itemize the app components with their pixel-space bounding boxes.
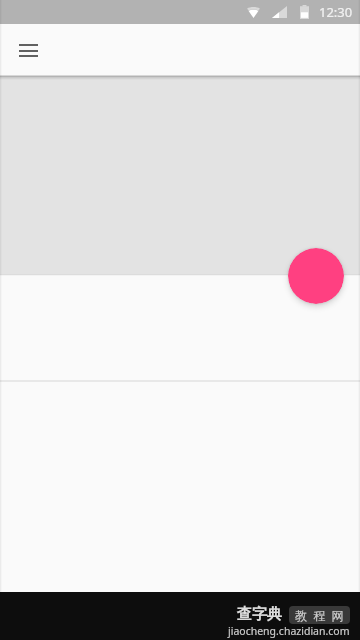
staticText: jiaocheng.chazidian.com	[228, 624, 350, 638]
staticText: 查字典	[237, 605, 282, 624]
button[interactable]: Add	[288, 248, 344, 304]
button[interactable]: Menu	[8, 30, 48, 70]
staticText: 教 程 网	[295, 607, 344, 623]
staticText: 12:30	[319, 3, 353, 21]
button[interactable]: List item 1	[0, 276, 360, 380]
